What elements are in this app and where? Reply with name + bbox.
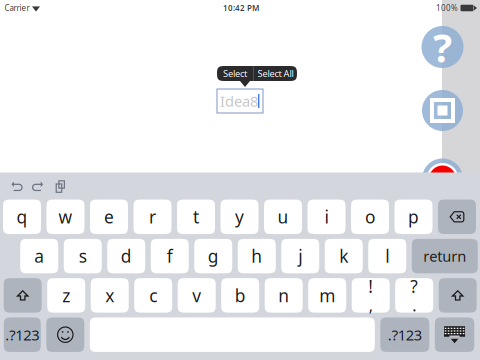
- button[interactable]: Select All: [254, 66, 297, 81]
- staticText: .: [412, 295, 416, 316]
- staticText: Select: [223, 67, 247, 80]
- staticText: h: [251, 245, 262, 268]
- staticText: a: [34, 245, 44, 268]
- button[interactable]: y: [220, 200, 258, 234]
- button[interactable]: q: [3, 200, 41, 234]
- staticText: d: [121, 245, 132, 268]
- button[interactable]: !: [352, 278, 390, 313]
- staticText: b: [235, 284, 246, 307]
- staticText: w: [58, 205, 72, 228]
- staticText: i: [324, 205, 328, 228]
- staticText: s: [79, 245, 87, 268]
- button[interactable]: Emoji: [46, 317, 84, 352]
- button[interactable]: v: [178, 278, 216, 313]
- staticText: x: [105, 284, 114, 307]
- button[interactable]: z: [47, 278, 85, 313]
- staticText: return: [423, 246, 466, 266]
- staticText: ?: [410, 275, 418, 298]
- button[interactable]: d: [107, 239, 145, 273]
- button[interactable]: s: [64, 239, 102, 273]
- button[interactable]: r: [133, 200, 171, 234]
- button[interactable]: .?123: [4, 317, 41, 352]
- button[interactable]: Redo: [27, 174, 49, 200]
- button[interactable]: Undo: [5, 174, 27, 200]
- staticText: Select All: [257, 67, 293, 80]
- staticText: q: [16, 205, 27, 228]
- staticText: r: [149, 205, 156, 228]
- button[interactable]: o: [351, 200, 389, 234]
- staticText: !: [368, 275, 373, 298]
- button[interactable]: Stop: [422, 90, 463, 131]
- staticText: u: [277, 205, 288, 228]
- staticText: 100%: [436, 3, 458, 13]
- button[interactable]: Delete: [438, 200, 476, 234]
- button[interactable]: k: [325, 239, 363, 273]
- button[interactable]: Select: [217, 66, 253, 81]
- staticText: z: [62, 284, 70, 307]
- staticText: ,: [369, 295, 373, 316]
- staticText: Carrier: [4, 3, 29, 13]
- staticText: t: [193, 205, 199, 228]
- staticText: l: [385, 245, 389, 268]
- button[interactable]: Shift: [439, 278, 477, 313]
- staticText: c: [149, 284, 157, 307]
- button[interactable]: f: [151, 239, 189, 273]
- staticText: j: [298, 245, 302, 268]
- staticText: g: [208, 245, 219, 268]
- staticText: .?123: [388, 325, 422, 344]
- button[interactable]: p: [394, 200, 432, 234]
- staticText: .?123: [5, 325, 39, 344]
- button[interactable]: Paste: [49, 174, 71, 200]
- button[interactable]: return: [412, 239, 478, 273]
- button[interactable]: l: [368, 239, 406, 273]
- staticText: 10:42 PM: [223, 3, 259, 13]
- button[interactable]: u: [264, 200, 302, 234]
- staticText: m: [319, 284, 335, 307]
- button[interactable]: w: [46, 200, 84, 234]
- button[interactable]: ?: [395, 278, 433, 313]
- button[interactable]: m: [308, 278, 346, 313]
- button[interactable]: n: [265, 278, 303, 313]
- button[interactable]: e: [90, 200, 128, 234]
- staticText: y: [235, 205, 244, 228]
- staticText: e: [104, 205, 114, 228]
- staticText: f: [167, 245, 173, 268]
- staticText: p: [408, 205, 419, 228]
- staticText: Idea8: [220, 91, 258, 111]
- button[interactable]: x: [91, 278, 129, 313]
- button[interactable]: t: [177, 200, 215, 234]
- button[interactable]: a: [20, 239, 58, 273]
- staticText: n: [278, 284, 289, 307]
- staticText: v: [192, 284, 201, 307]
- button[interactable]: h: [238, 239, 276, 273]
- button[interactable]: Record: [422, 158, 463, 199]
- button[interactable]: c: [134, 278, 172, 313]
- button[interactable]: Hide keyboard: [435, 317, 474, 352]
- button[interactable]: .?123: [380, 317, 429, 352]
- staticText: o: [365, 205, 375, 228]
- button[interactable]: i: [307, 200, 345, 234]
- button[interactable]: b: [221, 278, 259, 313]
- button[interactable]: Shift: [4, 278, 42, 313]
- button[interactable]: j: [281, 239, 319, 273]
- button[interactable]: g: [194, 239, 232, 273]
- staticText: k: [339, 245, 348, 268]
- staticText: ?: [433, 20, 452, 73]
- button[interactable]: Help: [421, 26, 463, 68]
